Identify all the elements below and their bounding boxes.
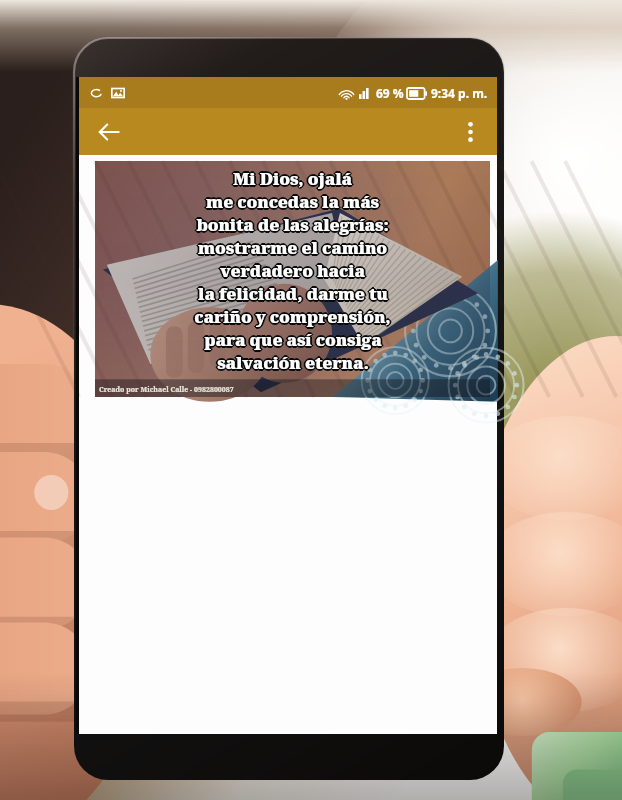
staticText: para que así consiga bbox=[206, 328, 384, 351]
staticText: mostrarme el camino bbox=[198, 236, 387, 259]
staticText: para que así consiga bbox=[203, 329, 381, 352]
staticText: me concedas la más bbox=[206, 191, 379, 214]
staticText: bonita de las alegrías: bbox=[198, 213, 391, 236]
staticText: Mi Dios, ojalá bbox=[234, 167, 353, 190]
staticText: cariño y comprensión, bbox=[195, 305, 392, 328]
staticText: Mi Dios, ojalá bbox=[233, 166, 352, 189]
staticText: mostrarme el camino bbox=[196, 236, 385, 259]
staticText: me concedas la más bbox=[207, 191, 380, 214]
staticText: mostrarme el camino bbox=[197, 235, 386, 258]
button[interactable]: Back bbox=[87, 110, 131, 154]
staticText: Mi Dios, ojalá bbox=[232, 167, 351, 190]
staticText: cariño y comprensión, bbox=[195, 304, 392, 327]
staticText: mostrarme el camino bbox=[199, 237, 388, 260]
staticText: mostrarme el camino bbox=[198, 235, 387, 258]
staticText: cariño y comprensión, bbox=[193, 305, 390, 328]
staticText: para que así consiga bbox=[202, 328, 380, 351]
button[interactable]: More options bbox=[449, 111, 491, 153]
staticText: cariño y comprensión, bbox=[194, 304, 391, 327]
staticText: me concedas la más bbox=[206, 188, 379, 211]
staticText: verdadero hacia bbox=[220, 259, 365, 282]
staticText: mostrarme el camino bbox=[198, 238, 387, 261]
staticText: bonita de las alegrías: bbox=[194, 213, 387, 236]
staticText: verdadero hacia bbox=[219, 259, 364, 282]
staticText: salvación eterna. bbox=[218, 350, 370, 373]
staticText: mostrarme el camino bbox=[199, 236, 388, 259]
staticText: para que así consiga bbox=[205, 328, 383, 351]
staticText: cariño y comprensión, bbox=[195, 306, 392, 329]
staticText: 9:34 p. m. bbox=[431, 85, 488, 101]
staticText: mostrarme el camino bbox=[198, 234, 387, 257]
staticText: salvación eterna. bbox=[217, 351, 369, 374]
staticText: para que así consiga bbox=[205, 329, 383, 352]
staticText: verdadero hacia bbox=[221, 259, 366, 282]
staticText: bonita de las alegrías: bbox=[196, 213, 389, 236]
staticText: verdadero hacia bbox=[221, 260, 366, 283]
staticText: me concedas la más bbox=[206, 189, 379, 212]
staticText: la felicidad, darme tu bbox=[198, 282, 388, 305]
staticText: salvación eterna. bbox=[218, 352, 370, 375]
staticText: para que así consiga bbox=[204, 328, 382, 351]
staticText: bonita de las alegrías: bbox=[195, 213, 388, 236]
staticText: salvación eterna. bbox=[217, 349, 369, 372]
staticText: me concedas la más bbox=[206, 190, 379, 213]
staticText: mostrarme el camino bbox=[197, 236, 386, 259]
staticText: cariño y comprensión, bbox=[196, 305, 393, 328]
staticText: para que así consiga bbox=[203, 328, 381, 351]
staticText: la felicidad, darme tu bbox=[197, 282, 387, 305]
staticText: Mi Dios, ojalá bbox=[233, 165, 352, 188]
staticText: me concedas la más bbox=[206, 192, 379, 215]
staticText: Mi Dios, ojalá bbox=[233, 167, 352, 190]
staticText: Mi Dios, ojalá bbox=[231, 167, 350, 190]
staticText: 69 % bbox=[376, 85, 404, 101]
staticText: verdadero hacia bbox=[220, 258, 365, 281]
staticText: para que así consiga bbox=[204, 327, 382, 350]
staticText: Mi Dios, ojalá bbox=[235, 167, 354, 190]
staticText: para que así consiga bbox=[204, 326, 382, 349]
staticText: bonita de las alegrías: bbox=[196, 215, 389, 238]
staticText: me concedas la más bbox=[207, 190, 380, 213]
staticText: para que así consiga bbox=[205, 327, 383, 350]
staticText: verdadero hacia bbox=[221, 258, 366, 281]
button[interactable]: Quote image bbox=[95, 161, 490, 397]
staticText: verdadero hacia bbox=[220, 261, 365, 284]
staticText: la felicidad, darme tu bbox=[198, 281, 388, 304]
staticText: me concedas la más bbox=[207, 189, 380, 212]
staticText: la felicidad, darme tu bbox=[197, 283, 387, 306]
staticText: bonita de las alegrías: bbox=[197, 214, 390, 237]
staticText: bonita de las alegrías: bbox=[197, 212, 390, 235]
staticText: mostrarme el camino bbox=[197, 237, 386, 260]
staticText: verdadero hacia bbox=[218, 259, 363, 282]
staticText: salvación eterna. bbox=[215, 351, 367, 374]
staticText: bonita de las alegrías: bbox=[196, 212, 389, 235]
staticText: me concedas la más bbox=[204, 190, 377, 213]
staticText: la felicidad, darme tu bbox=[198, 280, 388, 303]
staticText: bonita de las alegrías: bbox=[196, 211, 389, 234]
staticText: salvación eterna. bbox=[217, 353, 369, 376]
staticText: bonita de las alegrías: bbox=[197, 213, 390, 236]
staticText: la felicidad, darme tu bbox=[199, 281, 389, 304]
staticText: bonita de las alegrías: bbox=[195, 214, 388, 237]
staticText: verdadero hacia bbox=[222, 259, 367, 282]
staticText: cariño y comprensión, bbox=[194, 305, 391, 328]
staticText: Mi Dios, ojalá bbox=[232, 166, 351, 189]
staticText: Mi Dios, ojalá bbox=[233, 169, 352, 192]
staticText: mostrarme el camino bbox=[199, 235, 388, 258]
staticText: la felicidad, darme tu bbox=[196, 282, 386, 305]
staticText: bonita de las alegrías: bbox=[195, 212, 388, 235]
staticText: salvación eterna. bbox=[216, 350, 368, 373]
staticText: verdadero hacia bbox=[219, 258, 364, 281]
staticText: Mi Dios, ojalá bbox=[232, 168, 351, 191]
staticText: salvación eterna. bbox=[217, 352, 369, 375]
staticText: para que así consiga bbox=[204, 330, 382, 353]
staticText: mostrarme el camino bbox=[198, 237, 387, 260]
staticText: cariño y comprensión, bbox=[194, 303, 391, 326]
staticText: cariño y comprensión, bbox=[194, 306, 391, 329]
staticText: cariño y comprensión, bbox=[192, 305, 389, 328]
staticText: Mi Dios, ojalá bbox=[234, 168, 353, 191]
staticText: Mi Dios, ojalá bbox=[233, 168, 352, 191]
staticText: la felicidad, darme tu bbox=[199, 282, 389, 305]
staticText: cariño y comprensión, bbox=[193, 306, 390, 329]
staticText: salvación eterna. bbox=[216, 352, 368, 375]
staticText: para que así consiga bbox=[204, 329, 382, 352]
